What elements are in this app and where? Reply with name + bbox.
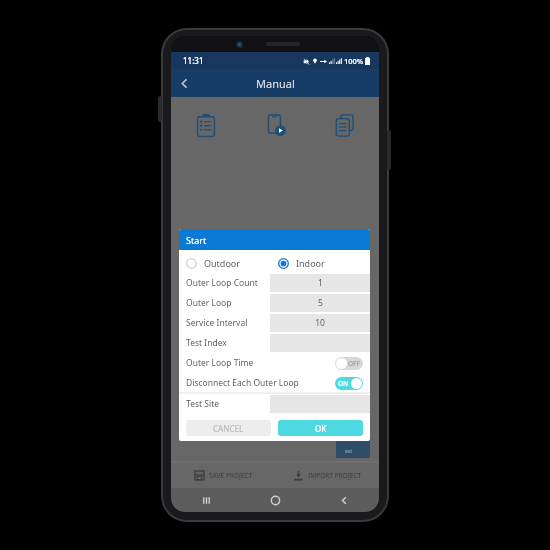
staticText: IMPORT PROJECT (308, 471, 362, 480)
staticText: Start (186, 234, 207, 246)
staticText: ON (338, 379, 349, 388)
button[interactable]: Back (171, 70, 197, 96)
button[interactable]: Disconnect Each Outer Loop (186, 373, 363, 393)
staticText: Outer Loop Interval(s (186, 297, 270, 309)
button[interactable]: Recents (171, 488, 241, 512)
staticText: Service Interval (186, 317, 270, 329)
staticText: SAVE PROJECT (209, 471, 253, 480)
button[interactable]: IMPORT PROJECT (275, 462, 379, 488)
button[interactable]: CANCEL (186, 420, 271, 436)
staticText: Test Index (186, 337, 270, 349)
button[interactable]: Reports (329, 109, 361, 141)
staticText: Outdoor (204, 257, 240, 269)
staticText: CANCEL (213, 423, 244, 434)
button[interactable]: Indoor (278, 257, 370, 269)
button[interactable]: SAVE PROJECT (171, 462, 275, 488)
staticText: Indoor (296, 257, 325, 269)
button[interactable]: Outdoor (186, 257, 278, 269)
button[interactable]: Run test (260, 109, 292, 141)
staticText: OFF (348, 359, 360, 368)
button[interactable]: OK (278, 420, 363, 436)
staticText: est (345, 448, 353, 455)
staticText: 11:31 (183, 55, 204, 66)
button[interactable]: Checklist (190, 109, 222, 141)
button[interactable]: Back (310, 488, 379, 512)
staticText: OK (315, 423, 327, 434)
staticText: Outer Loop Time (186, 357, 335, 369)
button[interactable]: Home (241, 488, 310, 512)
staticText: 10 (315, 317, 325, 329)
staticText: 5 (318, 297, 323, 309)
staticText: Manual (256, 76, 295, 91)
staticText: Test Site (186, 398, 270, 410)
staticText: Disconnect Each Outer Loop (186, 377, 335, 389)
staticText: Outer Loop Count (186, 277, 270, 289)
staticText: 100% (344, 56, 364, 66)
staticText: 1 (318, 277, 323, 289)
button[interactable]: Outer Loop Time (186, 353, 363, 373)
